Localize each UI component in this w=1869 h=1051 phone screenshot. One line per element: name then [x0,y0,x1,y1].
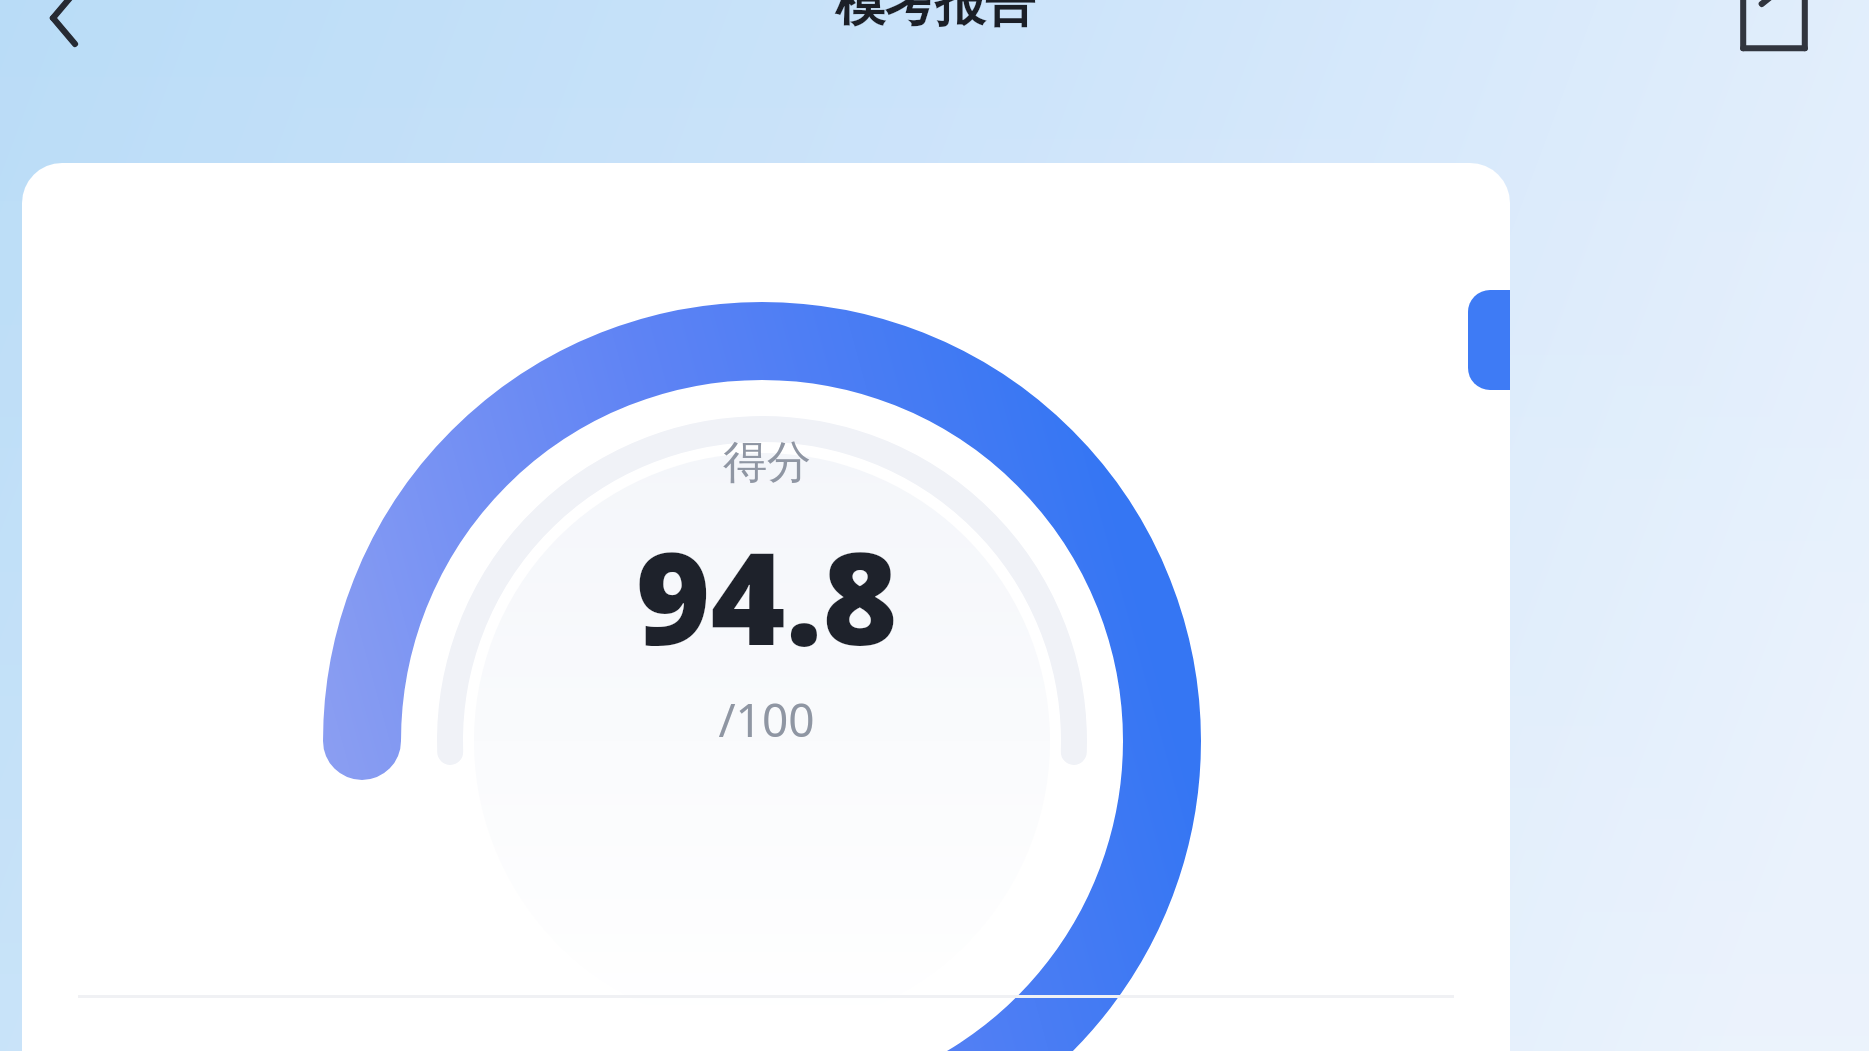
staticText: /100 [718,688,815,751]
button[interactable]: Back [8,0,108,66]
staticText: 得分 [723,435,811,490]
button[interactable]: Share [1719,0,1829,70]
button[interactable]: 难度4.6 [1468,290,1510,390]
button[interactable]: 得分 [22,163,1510,1051]
staticText: 模考报告 [835,0,1035,35]
staticText: 94.8 [635,508,898,682]
